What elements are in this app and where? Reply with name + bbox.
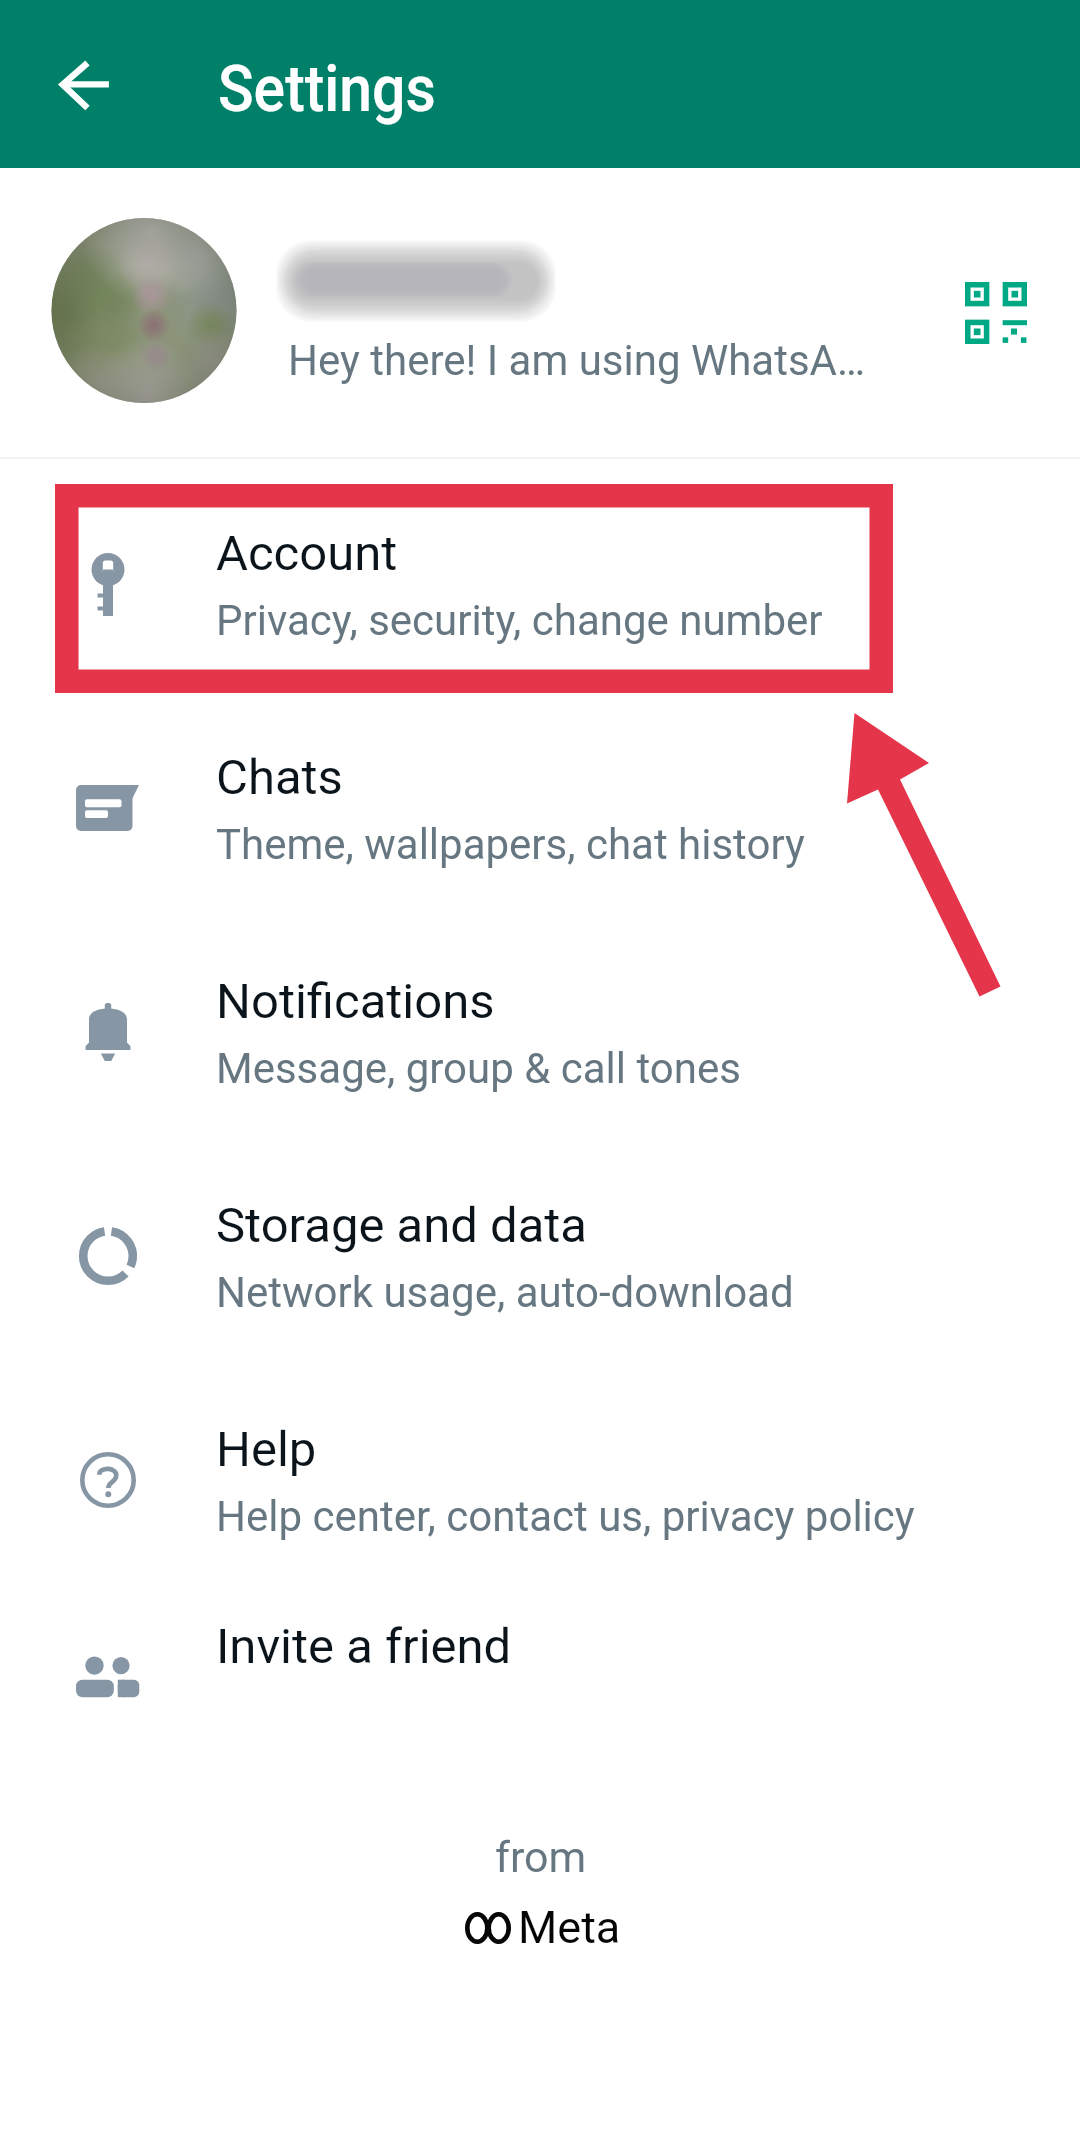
staticText: Help bbox=[216, 1421, 317, 1478]
staticText: Network usage, auto-download bbox=[216, 1268, 794, 1317]
button[interactable]: Storage and data bbox=[0, 1132, 1080, 1356]
staticText: Theme, wallpapers, chat history bbox=[216, 820, 805, 869]
button[interactable]: Hey there! I am using WhatsA… bbox=[0, 168, 1080, 457]
button[interactable]: QR code bbox=[956, 273, 1036, 353]
button[interactable]: Chats bbox=[0, 684, 1080, 908]
button[interactable]: Account bbox=[0, 460, 1080, 684]
staticText: Account bbox=[216, 525, 398, 582]
staticText: Hey there! I am using WhatsA… bbox=[288, 336, 866, 385]
staticText: Meta bbox=[518, 1901, 621, 1954]
staticText: Chats bbox=[216, 749, 343, 806]
staticText: Invite a friend bbox=[216, 1618, 512, 1675]
staticText: Privacy, security, change number bbox=[216, 596, 823, 645]
staticText: Settings bbox=[218, 51, 436, 127]
staticText: Message, group & call tones bbox=[216, 1044, 741, 1093]
staticText: Storage and data bbox=[216, 1197, 588, 1254]
staticText: Help center, contact us, privacy policy bbox=[216, 1492, 915, 1541]
button[interactable]: Help bbox=[0, 1356, 1080, 1568]
button[interactable]: Notifications bbox=[0, 908, 1080, 1132]
button[interactable]: Back bbox=[35, 36, 131, 132]
staticText: from bbox=[495, 1832, 587, 1882]
button[interactable]: Invite a friend bbox=[0, 1568, 1080, 1720]
staticText: Notifications bbox=[216, 973, 495, 1030]
